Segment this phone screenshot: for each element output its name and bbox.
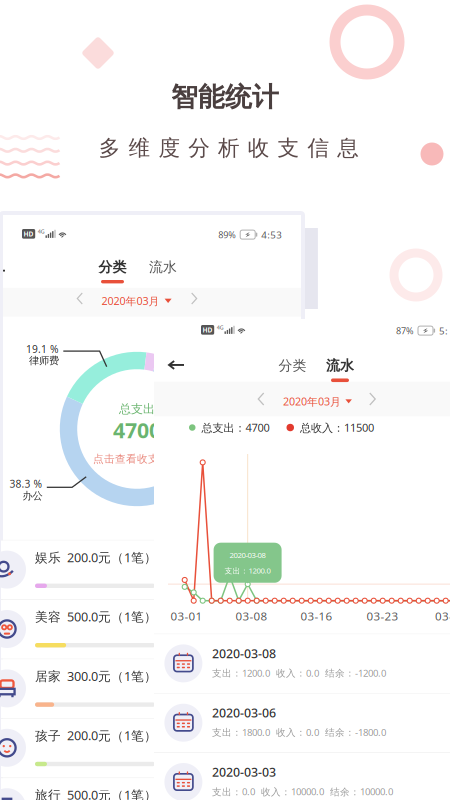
staticText: 2020-03-06 (212, 704, 276, 721)
button[interactable]: 居家 300.0元（1笔） (1, 659, 299, 718)
staticText: 2020-03-03 (212, 763, 276, 780)
staticText: 87% (396, 324, 414, 337)
button[interactable]: 分类 (90, 258, 134, 283)
button[interactable]: 孩子 200.0元（1笔） (1, 718, 299, 777)
button[interactable]: 2020-03-03 (154, 752, 450, 800)
button[interactable]: 2020-03-06 (154, 693, 450, 752)
staticText: HD (203, 325, 213, 334)
staticText: 娱乐 200.0元（1笔） (35, 549, 157, 566)
staticText: 总收入：11500 (300, 420, 374, 435)
staticText: 03- (435, 608, 450, 624)
button[interactable]: Next month (187, 288, 202, 309)
button[interactable]: 2020年03月 (283, 388, 352, 415)
button[interactable]: 2020-03-08 (154, 634, 450, 693)
staticText: 4G (217, 324, 224, 331)
staticText: 流水 (326, 357, 354, 374)
staticText: 分类 (278, 357, 306, 374)
staticText: 孩子 200.0元（1笔） (35, 727, 157, 744)
button[interactable]: 分类 (269, 357, 315, 382)
staticText: 19.1 % (26, 342, 59, 356)
staticText: 居家 300.0元（1笔） (35, 667, 157, 685)
button[interactable]: 娱乐 200.0元（1笔） (1, 540, 299, 599)
button[interactable]: 流水 (141, 258, 185, 283)
button[interactable]: Next month (364, 387, 381, 411)
staticText: 03-16 (300, 608, 332, 624)
staticText: 4700 (113, 415, 161, 445)
staticText: 律师费 (29, 354, 59, 367)
staticText: 旅行 500.0元（1笔） (35, 786, 157, 800)
staticText: 38.3 % (10, 477, 43, 491)
staticText: 智能统计 (171, 80, 279, 114)
staticText: 美容 500.0元（1笔） (35, 608, 157, 625)
staticText: 流水 (149, 258, 177, 276)
staticText: 办公 (23, 489, 43, 502)
staticText: 2020-03-08 (230, 550, 266, 560)
staticText: 03-08 (235, 608, 267, 624)
staticText: 总支出 (119, 401, 155, 416)
staticText: 4G (38, 228, 45, 235)
staticText: 支出：0.0 收入：10000.0 结余：10000.0 (212, 785, 393, 798)
staticText: 点击查看收支详情 (93, 452, 181, 466)
staticText: 总支出：4700 (201, 420, 269, 435)
button[interactable]: Previous month (72, 288, 87, 309)
staticText: 支出：1800.0 收入：0.0 结余：-1800.0 (212, 726, 386, 739)
staticText: 03-01 (170, 608, 202, 624)
staticText: 支出：1200.0 收入：0.0 结余：-1200.0 (212, 666, 386, 679)
staticText: 多维度分析收支信息 (99, 134, 359, 162)
button[interactable]: 美容 500.0元（1笔） (1, 599, 299, 659)
button[interactable]: 2020年03月 (102, 288, 172, 313)
staticText: 2020年03月 (102, 293, 160, 308)
button[interactable]: Back (0, 258, 13, 283)
staticText: 03-23 (367, 608, 399, 624)
button[interactable]: Previous month (252, 387, 270, 411)
staticText: 89% (218, 228, 236, 241)
staticText: 支出：1200.0 (225, 565, 271, 576)
staticText: HD (24, 229, 34, 238)
staticText: 分类 (98, 258, 126, 276)
staticText: 2020年03月 (283, 394, 341, 409)
staticText: 4:53 (261, 228, 282, 241)
staticText: 2020-03-08 (212, 645, 276, 662)
button[interactable]: Back (157, 351, 195, 379)
staticText: 5: (439, 324, 448, 337)
button[interactable]: 旅行 500.0元（1笔） (1, 777, 299, 800)
button[interactable]: 流水 (317, 357, 363, 382)
